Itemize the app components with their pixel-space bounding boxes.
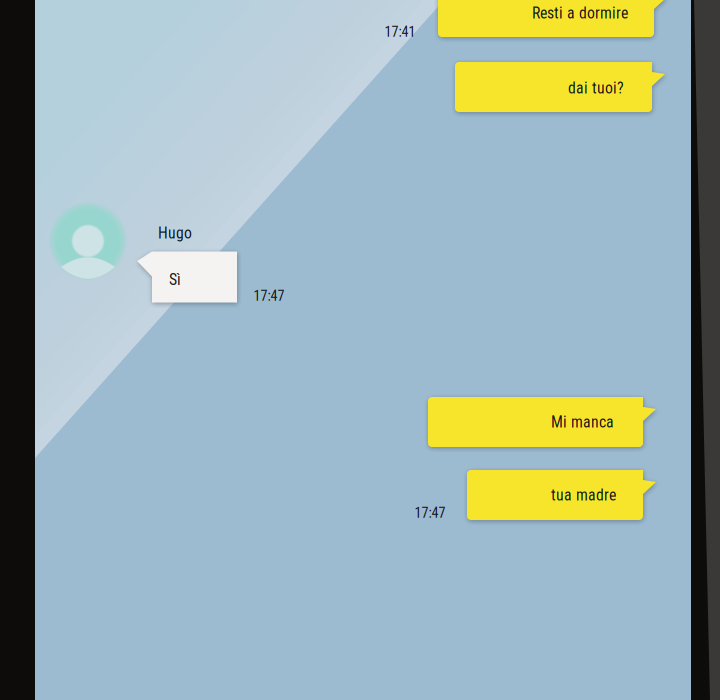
button[interactable]: Resti a dormire [438,0,667,37]
button[interactable]: tua madre [467,470,656,520]
staticText: Sì [169,270,181,289]
staticText: 17:47 [414,505,445,521]
staticText: Mi manca [551,413,614,431]
button[interactable]: Sì [137,251,237,302]
staticText: 17:47 [253,288,284,304]
button[interactable]: Mi manca [428,397,656,447]
staticText: Resti a dormire [532,4,628,22]
staticText: tua madre [551,486,616,504]
staticText: 17:41 [384,24,415,40]
button[interactable]: dai tuoi? [455,62,665,112]
staticText: dai tuoi? [568,79,624,97]
staticText: Hugo [158,224,192,242]
